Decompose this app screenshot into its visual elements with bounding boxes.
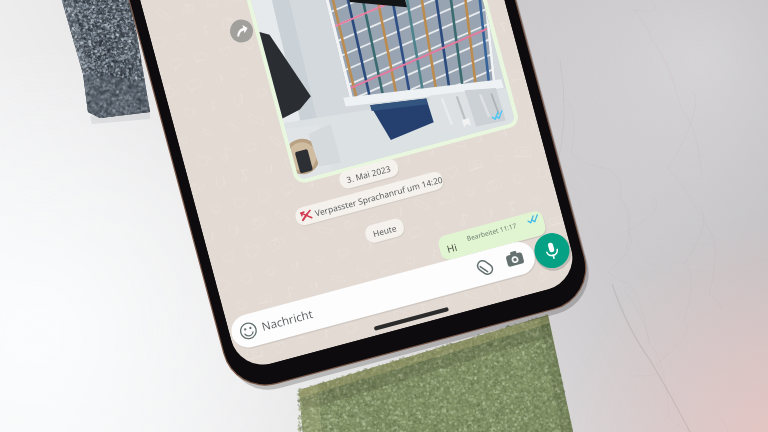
other: WhatsApp chat on phone — [22, 0, 493, 15]
